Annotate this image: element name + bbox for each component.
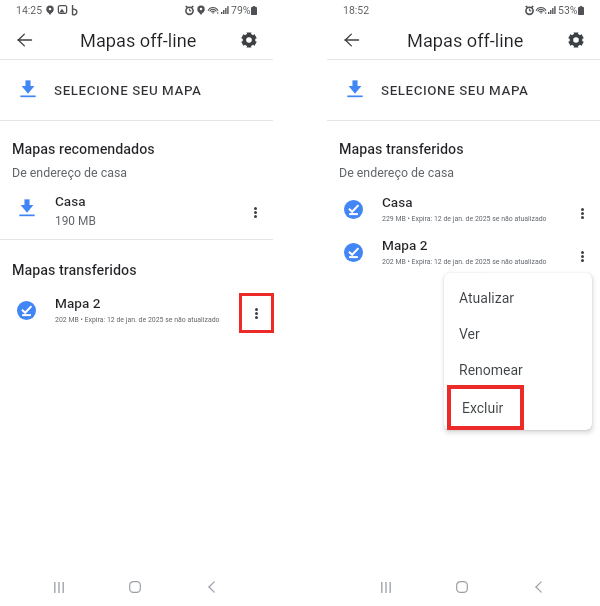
button[interactable]: Settings — [558, 22, 594, 58]
staticText: 202 MB • Expira: 12 de jan. de 2025 se n… — [382, 258, 547, 266]
staticText: 202 MB • Expira: 12 de jan. de 2025 se n… — [55, 316, 220, 324]
button[interactable]: Back — [195, 571, 227, 603]
button[interactable]: More options — [565, 236, 599, 276]
button[interactable]: Home — [446, 571, 478, 603]
staticText: SELECIONE SEU MAPA — [381, 83, 529, 99]
button[interactable]: Back — [6, 22, 42, 58]
button[interactable]: Back — [333, 22, 369, 58]
button[interactable]: More options — [238, 192, 272, 232]
button[interactable]: SELECIONE SEU MAPA — [327, 61, 600, 120]
staticText: Excluir — [459, 398, 501, 414]
staticText: Mapa 2 — [55, 295, 101, 311]
staticText: 14:25 — [16, 4, 43, 16]
staticText: Casa — [55, 193, 86, 209]
staticText: Ver — [459, 326, 480, 342]
staticText: Renomear — [459, 362, 523, 378]
button[interactable]: SELECIONE SEU MAPA — [0, 61, 273, 120]
staticText: Mapas recomendados — [12, 141, 155, 158]
staticText: Excluir — [462, 400, 504, 416]
staticText: Mapas transferidos — [12, 262, 137, 279]
staticText: SELECIONE SEU MAPA — [54, 83, 202, 99]
staticText: 79% — [231, 4, 251, 16]
button[interactable]: Casa — [327, 193, 600, 233]
staticText: 53% — [558, 4, 578, 16]
staticText: Atualizar — [459, 290, 515, 306]
staticText: Casa — [382, 194, 413, 210]
button[interactable]: Recents — [43, 571, 75, 603]
button[interactable]: Atualizar — [444, 280, 592, 316]
staticText: De endereço de casa — [339, 165, 455, 180]
staticText: Mapas off-line — [80, 30, 197, 51]
button[interactable]: Excluir — [444, 388, 592, 424]
button[interactable]: Home — [119, 571, 151, 603]
button[interactable]: More options — [565, 193, 599, 233]
button[interactable]: Mapa 2 — [0, 294, 273, 334]
button[interactable]: Ver — [444, 316, 592, 352]
button[interactable]: Renomear — [444, 352, 592, 388]
staticText: 18:52 — [343, 4, 370, 16]
staticText: 229 MB • Expira: 12 de jan. de 2025 se n… — [382, 215, 547, 223]
staticText: 190 MB — [55, 214, 96, 228]
button[interactable]: Casa — [0, 192, 273, 232]
staticText: Mapas transferidos — [339, 141, 464, 158]
button[interactable]: More options — [238, 294, 272, 334]
button[interactable]: Recents — [370, 571, 402, 603]
button[interactable]: Mapa 2 — [327, 236, 600, 276]
button[interactable]: Back — [522, 571, 554, 603]
staticText: De endereço de casa — [12, 165, 128, 180]
staticText: Mapa 2 — [382, 237, 428, 253]
button[interactable]: Settings — [231, 22, 267, 58]
staticText: Mapas off-line — [407, 30, 524, 51]
